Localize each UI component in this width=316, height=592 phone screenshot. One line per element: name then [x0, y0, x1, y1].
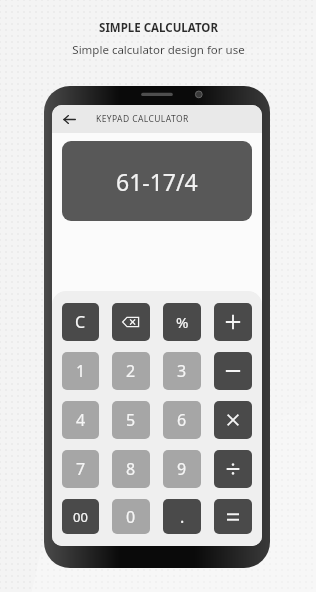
- button[interactable]: Back: [58, 108, 80, 130]
- button[interactable]: 3: [163, 352, 201, 390]
- staticText: 0: [126, 506, 136, 528]
- staticText: KEYPAD CALCULATOR: [96, 113, 189, 125]
- button[interactable]: %: [163, 303, 201, 341]
- button[interactable]: Equals: [214, 499, 252, 534]
- staticText: 2: [126, 360, 136, 382]
- button[interactable]: 00: [62, 499, 99, 534]
- staticText: SIMPLE CALCULATOR: [99, 20, 218, 36]
- button[interactable]: 7: [62, 450, 99, 488]
- button[interactable]: 9: [163, 450, 201, 488]
- button[interactable]: C: [62, 303, 99, 341]
- staticText: Simple calculator design for use: [72, 42, 245, 58]
- staticText: 8: [126, 458, 136, 480]
- staticText: 00: [73, 508, 88, 526]
- button[interactable]: Divide: [214, 450, 252, 488]
- button[interactable]: 1: [62, 352, 99, 390]
- staticText: 9: [177, 458, 187, 480]
- button[interactable]: 0: [112, 499, 150, 534]
- staticText: 1: [76, 360, 86, 382]
- staticText: 3: [177, 360, 187, 382]
- staticText: .: [180, 506, 185, 528]
- staticText: C: [75, 311, 86, 333]
- button[interactable]: Subtract: [214, 352, 252, 390]
- button[interactable]: .: [163, 499, 201, 534]
- button[interactable]: Multiply: [214, 401, 252, 439]
- staticText: 61-17/4: [116, 166, 198, 197]
- staticText: 4: [76, 409, 86, 431]
- button[interactable]: 2: [112, 352, 150, 390]
- button[interactable]: 8: [112, 450, 150, 488]
- staticText: 5: [126, 409, 136, 431]
- staticText: 7: [76, 458, 86, 480]
- button[interactable]: 4: [62, 401, 99, 439]
- staticText: 6: [177, 409, 187, 431]
- button[interactable]: 6: [163, 401, 201, 439]
- staticText: %: [176, 312, 189, 332]
- button[interactable]: Backspace: [112, 303, 150, 341]
- button[interactable]: Add: [214, 303, 252, 341]
- button[interactable]: 5: [112, 401, 150, 439]
